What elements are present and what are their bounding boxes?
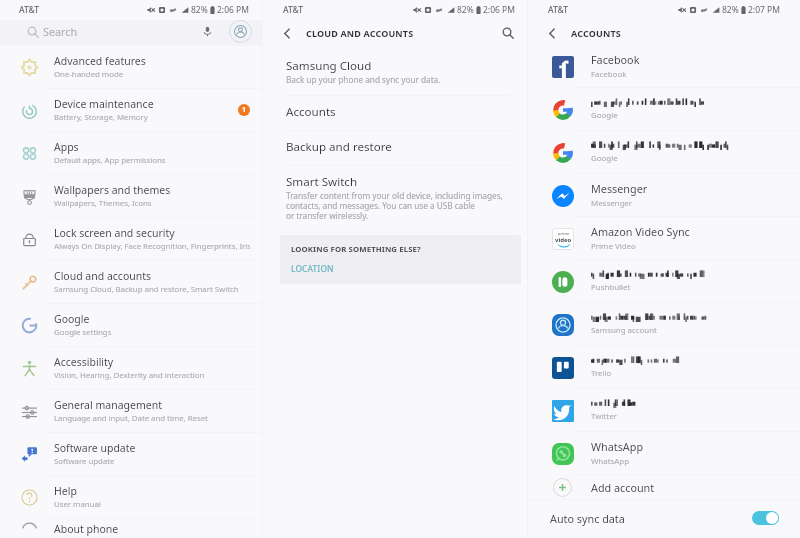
staticText: Accessibility	[54, 355, 114, 369]
staticText: Default apps, App permissions	[54, 155, 166, 166]
staticText: Software update	[54, 441, 136, 455]
staticText: Backup and restore	[286, 139, 392, 155]
button[interactable]: Smart Switch	[263, 166, 527, 232]
staticText: Twitter	[591, 411, 617, 422]
button[interactable]: Samsung Cloud	[263, 50, 527, 95]
button[interactable]: Back	[277, 23, 297, 43]
button[interactable]: Advanced features	[0, 46, 262, 88]
staticText: WhatsApp	[591, 456, 630, 467]
staticText: WhatsApp	[591, 439, 644, 454]
button[interactable]: Search	[501, 26, 515, 40]
staticText: Facebook	[591, 52, 640, 67]
staticText: 82%	[722, 4, 739, 16]
staticText: Wallpapers, Themes, Icons	[54, 198, 152, 209]
button[interactable]: Trello	[528, 346, 800, 388]
staticText: Google	[54, 312, 90, 326]
staticText: Lock screen and security	[54, 226, 175, 240]
staticText: Samsung Cloud	[286, 58, 372, 74]
button[interactable]	[752, 511, 779, 525]
staticText: 2:06 PM	[217, 4, 249, 16]
staticText: Pushbullet	[591, 282, 631, 293]
staticText: Trello	[591, 368, 612, 379]
button[interactable]: Google	[528, 131, 800, 173]
button[interactable]: Twitter	[528, 389, 800, 431]
button[interactable]: Account	[229, 20, 252, 43]
staticText: One-handed mode	[54, 69, 124, 80]
staticText: Add account	[591, 480, 655, 495]
staticText: Samsung Cloud, Backup and restore, Smart…	[54, 284, 239, 295]
staticText: AT&T	[19, 4, 40, 16]
button[interactable]: Add account	[528, 475, 800, 499]
staticText: Auto sync data	[550, 511, 625, 526]
staticText: Software update	[54, 456, 115, 467]
button[interactable]: Wallpapers and themes	[0, 175, 262, 217]
button[interactable]: Help	[0, 476, 262, 518]
staticText: CLOUD AND ACCOUNTS	[306, 27, 414, 39]
button[interactable]: WhatsApp	[528, 432, 800, 474]
staticText: User manual	[54, 499, 101, 510]
button[interactable]: Google	[0, 304, 262, 346]
button[interactable]: Accounts	[263, 96, 527, 130]
staticText: Wallpapers and themes	[54, 183, 171, 197]
staticText: Facebook	[591, 69, 627, 80]
button[interactable]: prime	[528, 217, 800, 259]
staticText: Help	[54, 484, 77, 498]
staticText: Vision, Hearing, Dexterity and interacti…	[54, 370, 205, 381]
staticText: Accounts	[286, 104, 336, 120]
staticText: Amazon Video Sync	[591, 224, 690, 239]
button[interactable]: Apps	[0, 132, 262, 174]
staticText: Always On Display, Face Recognition, Fin…	[54, 241, 250, 252]
staticText: ACCOUNTS	[571, 27, 621, 39]
button[interactable]: Google	[528, 88, 800, 130]
staticText: 2:06 PM	[483, 4, 515, 16]
staticText: Language and input, Date and time, Reset	[54, 413, 208, 424]
button[interactable]: Backup and restore	[263, 131, 527, 165]
button[interactable]: Samsung account	[528, 303, 800, 345]
staticText: About phone	[54, 522, 119, 536]
button[interactable]: Messenger	[528, 174, 800, 216]
staticText: LOCATION	[291, 263, 334, 274]
staticText: Battery, Storage, Memory	[54, 112, 148, 123]
staticText: video	[555, 236, 572, 244]
staticText: Google	[591, 110, 618, 121]
button[interactable]: About phone	[0, 519, 262, 538]
button[interactable]: Accessibility	[0, 347, 262, 389]
button[interactable]: Lock screen and security	[0, 218, 262, 260]
staticText: Cloud and accounts	[54, 269, 152, 283]
staticText: Google	[591, 153, 618, 164]
staticText: Messenger	[591, 181, 648, 196]
button[interactable]: Back	[542, 23, 562, 43]
staticText: Messenger	[591, 198, 633, 209]
staticText: Smart Switch	[286, 174, 358, 190]
staticText: prime	[558, 231, 570, 236]
staticText: 82%	[191, 4, 208, 16]
staticText: Back up your phone and sync your data.	[286, 74, 441, 85]
button[interactable]: Auto sync data	[528, 500, 800, 536]
button[interactable]: Cloud and accounts	[0, 261, 262, 303]
staticText: 82%	[457, 4, 474, 16]
staticText: LOOKING FOR SOMETHING ELSE?	[291, 244, 421, 255]
staticText: Google settings	[54, 327, 112, 338]
button[interactable]: Facebook	[528, 45, 800, 87]
staticText: Advanced features	[54, 54, 146, 68]
staticText: Device maintenance	[54, 97, 154, 111]
button[interactable]: Software update	[0, 433, 262, 475]
button[interactable]: Pushbullet	[528, 260, 800, 302]
button[interactable]: Device maintenance	[0, 89, 262, 131]
staticText: 2:07 PM	[748, 4, 780, 16]
staticText: AT&T	[548, 4, 569, 16]
button[interactable]: LOOKING FOR SOMETHING ELSE?	[280, 235, 521, 284]
staticText: Apps	[54, 140, 79, 154]
staticText: General management	[54, 398, 162, 412]
button[interactable]: General management	[0, 390, 262, 432]
staticText: Transfer content from your old device, i…	[286, 190, 503, 222]
staticText: 1	[242, 105, 247, 115]
staticText: Samsung account	[591, 325, 657, 336]
staticText: Search	[43, 24, 78, 39]
staticText: Prime Video	[591, 241, 636, 252]
staticText: AT&T	[283, 4, 304, 16]
